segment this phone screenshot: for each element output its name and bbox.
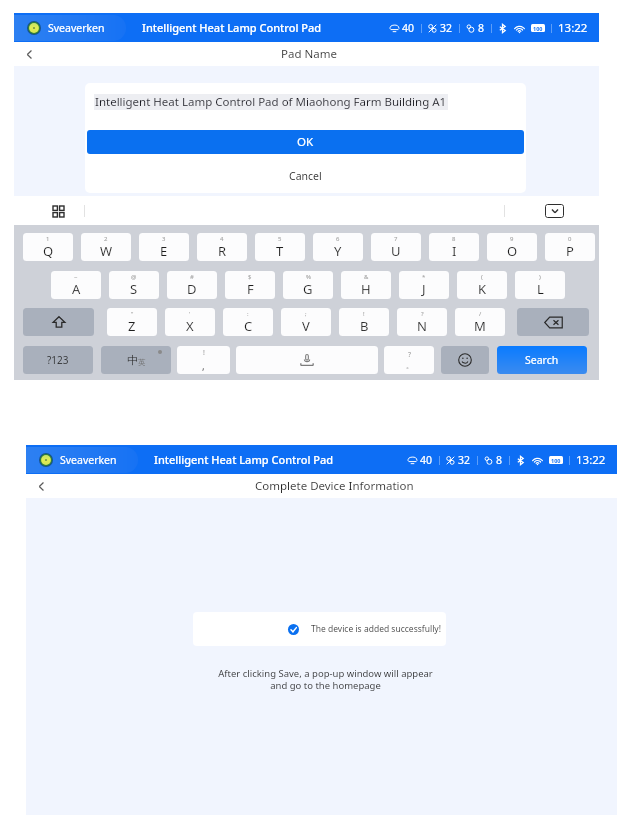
button[interactable]: 0 — [545, 233, 595, 261]
staticText: 5 — [278, 235, 282, 243]
button[interactable]: Emoji — [441, 346, 489, 374]
button[interactable]: Backspace — [517, 308, 589, 336]
staticText: " — [131, 310, 134, 318]
staticText: 4 — [220, 235, 224, 243]
button[interactable]: ! — [339, 308, 389, 336]
staticText: 40 — [420, 453, 433, 467]
button[interactable]: ; — [281, 308, 331, 336]
staticText: Sveaverken — [48, 21, 105, 35]
staticText: J — [422, 280, 426, 298]
staticText: 8 — [478, 21, 485, 35]
button[interactable]: * — [399, 271, 449, 299]
staticText: $ — [248, 273, 252, 281]
staticText: 13:22 — [576, 452, 606, 468]
staticText: C — [244, 317, 253, 335]
staticText: N — [417, 317, 427, 335]
button[interactable]: / — [455, 308, 505, 336]
button[interactable]: & — [341, 271, 391, 299]
button[interactable]: 1 — [23, 233, 73, 261]
staticText: 中 — [127, 353, 138, 367]
button[interactable]: Shift — [23, 308, 94, 336]
staticText: 40 — [402, 21, 415, 35]
staticText: 100 — [551, 457, 561, 464]
staticText: The device is added successfully! — [311, 623, 441, 635]
button[interactable]: 5 — [255, 233, 305, 261]
staticText: & — [364, 273, 369, 281]
button[interactable]: ? — [397, 308, 447, 336]
staticText: 32 — [458, 453, 471, 467]
staticText: I — [452, 242, 457, 260]
staticText: Cancel — [289, 169, 322, 183]
staticText: R — [218, 242, 227, 260]
staticText: 0 — [568, 235, 572, 243]
staticText: 。 — [406, 361, 413, 370]
staticText: ( — [481, 273, 483, 281]
staticText: Sveaverken — [60, 453, 117, 467]
staticText: * — [422, 273, 426, 281]
button[interactable]: 2 — [81, 233, 131, 261]
button[interactable]: 6 — [313, 233, 363, 261]
button[interactable]: : — [223, 308, 273, 336]
staticText: 英 — [138, 358, 146, 367]
staticText: P — [566, 242, 574, 260]
staticText: G — [303, 280, 313, 298]
button[interactable]: The device is added successfully! — [193, 612, 446, 646]
button[interactable]: ) — [515, 271, 565, 299]
button[interactable]: 8 — [429, 233, 479, 261]
staticText: K — [478, 280, 487, 298]
staticText: Y — [334, 242, 342, 260]
button[interactable]: Space — [236, 346, 378, 374]
staticText: 8 — [496, 453, 503, 467]
button[interactable]: OK — [87, 130, 524, 154]
staticText: Z — [128, 317, 136, 335]
button[interactable]: Hide keyboard — [545, 204, 564, 218]
staticText: X — [186, 317, 194, 335]
staticText: ? — [408, 350, 412, 360]
staticText: 7 — [394, 235, 398, 243]
staticText: Complete Device Information — [255, 478, 414, 494]
button[interactable]: 3 — [139, 233, 189, 261]
button[interactable]: ~ — [51, 271, 101, 299]
staticText: % — [306, 273, 311, 281]
staticText: Pad Name — [281, 46, 337, 62]
button[interactable]: Switch language — [101, 346, 171, 374]
staticText: V — [302, 317, 310, 335]
staticText: T — [276, 242, 284, 260]
staticText: Intelligent Heat Lamp Control Pad of Mia… — [95, 94, 447, 110]
button[interactable]: " — [107, 308, 157, 336]
button[interactable]: # — [167, 271, 217, 299]
button[interactable]: Back — [32, 477, 50, 495]
button[interactable]: 7 — [371, 233, 421, 261]
button[interactable]: ?123 — [23, 346, 93, 374]
staticText: , — [202, 359, 205, 373]
staticText: E — [160, 242, 168, 260]
button[interactable]: Period — [384, 346, 434, 374]
staticText: H — [361, 280, 371, 298]
button[interactable]: 4 — [197, 233, 247, 261]
staticText: D — [187, 280, 197, 298]
staticText: 8 — [452, 235, 456, 243]
button[interactable]: $ — [225, 271, 275, 299]
button[interactable]: % — [283, 271, 333, 299]
staticText: Intelligent Heat Lamp Control Pad — [154, 452, 334, 467]
button[interactable]: Cancel — [85, 168, 526, 184]
button[interactable]: ' — [165, 308, 215, 336]
button[interactable]: Search — [497, 346, 587, 374]
button[interactable]: Back — [20, 45, 38, 63]
staticText: A — [72, 280, 81, 298]
staticText: ?123 — [47, 353, 69, 367]
staticText: O — [507, 242, 518, 260]
button[interactable]: Keyboard menu — [50, 203, 66, 219]
staticText: ' — [189, 310, 191, 318]
staticText: 1 — [46, 235, 50, 243]
button[interactable]: ( — [457, 271, 507, 299]
staticText: # — [190, 273, 194, 281]
staticText: 9 — [510, 235, 514, 243]
staticText: Q — [43, 242, 54, 260]
staticText: ) — [539, 273, 541, 281]
button[interactable]: @ — [109, 271, 159, 299]
button[interactable]: Comma — [177, 346, 230, 374]
staticText: 32 — [440, 21, 453, 35]
staticText: F — [247, 280, 254, 298]
button[interactable]: 9 — [487, 233, 537, 261]
